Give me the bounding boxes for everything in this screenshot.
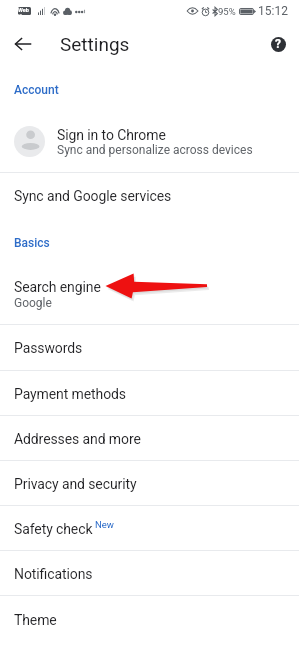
staticText: Account bbox=[14, 83, 59, 97]
button[interactable]: Payment methods bbox=[0, 371, 299, 415]
button[interactable]: Search engine bbox=[0, 263, 299, 324]
staticText: Sync and personalize across devices bbox=[57, 143, 253, 157]
button[interactable]: Back bbox=[10, 31, 36, 57]
staticText: 15:12 bbox=[258, 4, 288, 18]
button[interactable]: Theme bbox=[0, 596, 299, 641]
button[interactable]: Notifications bbox=[0, 551, 299, 595]
staticText: 95% bbox=[218, 6, 236, 17]
staticText: Addresses and more bbox=[14, 431, 141, 447]
staticText: Notifications bbox=[14, 566, 93, 582]
staticText: Safety check bbox=[14, 521, 93, 537]
staticText: WebU bbox=[18, 7, 31, 15]
staticText: New bbox=[95, 519, 114, 530]
staticText: Settings bbox=[60, 33, 130, 55]
staticText: Theme bbox=[14, 612, 57, 628]
button[interactable]: Sync and Google services bbox=[0, 173, 299, 218]
button[interactable]: Help bbox=[265, 31, 291, 57]
staticText: Google bbox=[14, 296, 52, 310]
button[interactable]: Addresses and more bbox=[0, 416, 299, 460]
staticText: Search engine bbox=[14, 279, 101, 295]
staticText: Sign in to Chrome bbox=[57, 127, 166, 143]
button[interactable]: Safety check bbox=[0, 506, 299, 550]
staticText: Privacy and security bbox=[14, 476, 137, 492]
button[interactable]: Sign in to Chrome bbox=[0, 114, 299, 172]
staticText: Basics bbox=[14, 236, 50, 250]
staticText: Payment methods bbox=[14, 386, 126, 402]
staticText: ? bbox=[275, 37, 281, 51]
button[interactable]: Privacy and security bbox=[0, 461, 299, 505]
staticText: Passwords bbox=[14, 340, 83, 356]
button[interactable]: Passwords bbox=[0, 325, 299, 370]
staticText: Sync and Google services bbox=[14, 188, 172, 204]
